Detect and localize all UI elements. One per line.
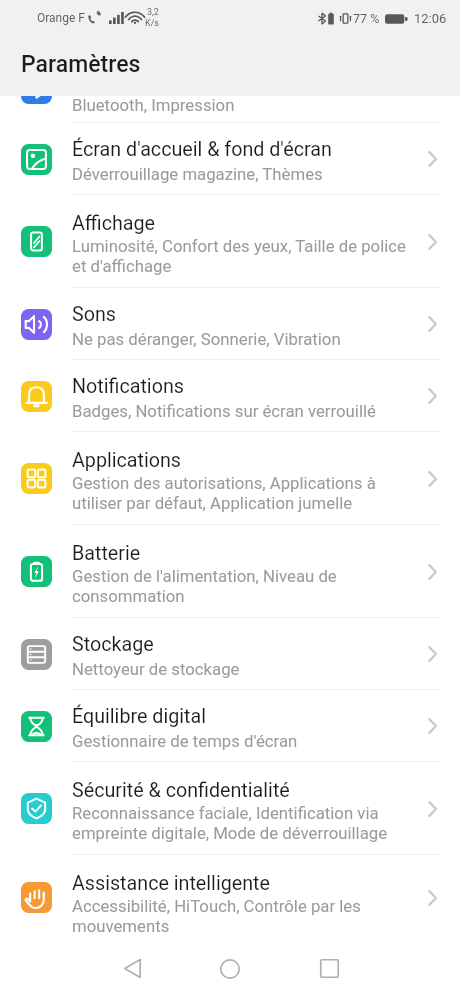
staticText: 77 %: [353, 11, 380, 26]
staticText: Gestionnaire de temps d'écran: [72, 731, 298, 751]
staticText: Sons: [72, 303, 116, 326]
staticText: Notifications: [72, 375, 184, 398]
staticText: Gestion des autorisations, Applications …: [72, 473, 376, 493]
staticText: Déverrouillage magazine, Thèmes: [72, 164, 323, 184]
button[interactable]: Bluetooth, Impression: [0, 96, 460, 123]
staticText: Équilibre digital: [72, 705, 206, 728]
button[interactable]: Batterie: [0, 525, 460, 618]
staticText: Orange F: [37, 11, 85, 25]
button[interactable]: Équilibre digital: [0, 690, 460, 762]
button[interactable]: Recents: [308, 940, 350, 997]
staticText: Luminosité, Confort des yeux, Taille de …: [72, 236, 406, 256]
staticText: Stockage: [72, 633, 154, 656]
staticText: K/s: [145, 18, 160, 29]
staticText: Paramètres: [21, 51, 141, 78]
staticText: Bluetooth, Impression: [72, 96, 235, 115]
button[interactable]: Home: [209, 940, 251, 997]
button[interactable]: Applications: [0, 432, 460, 525]
staticText: utiliser par défaut, Application jumelle: [72, 493, 353, 513]
staticText: Écran d'accueil & fond d'écran: [72, 138, 332, 161]
staticText: empreinte digitale, Mode de déverrouilla…: [72, 823, 388, 843]
button[interactable]: Sons: [0, 288, 460, 360]
staticText: Badges, Notifications sur écran verrouil…: [72, 401, 376, 421]
button[interactable]: Écran d'accueil & fond d'écran: [0, 123, 460, 195]
staticText: Ne pas déranger, Sonnerie, Vibration: [72, 329, 341, 349]
staticText: et d'affichage: [72, 256, 172, 276]
staticText: 12:06: [414, 11, 447, 26]
staticText: Assistance intelligente: [72, 872, 270, 895]
staticText: Accessibilité, HiTouch, Contrôle par les: [72, 896, 361, 916]
button[interactable]: Affichage: [0, 195, 460, 288]
button[interactable]: Assistance intelligente: [0, 855, 460, 940]
button[interactable]: Notifications: [0, 360, 460, 432]
staticText: Reconnaissance faciale, Identification v…: [72, 803, 379, 823]
staticText: Nettoyeur de stockage: [72, 659, 240, 679]
button[interactable]: Back: [111, 940, 153, 997]
staticText: Applications: [72, 449, 182, 472]
staticText: consommation: [72, 586, 185, 606]
staticText: 3,2: [147, 7, 159, 18]
button[interactable]: Sécurité & confidentialité: [0, 762, 460, 855]
button[interactable]: Stockage: [0, 618, 460, 690]
staticText: Batterie: [72, 542, 141, 565]
staticText: Sécurité & confidentialité: [72, 779, 290, 802]
staticText: mouvements: [72, 916, 170, 936]
staticText: Affichage: [72, 212, 155, 235]
staticText: Gestion de l'alimentation, Niveau de: [72, 566, 337, 586]
